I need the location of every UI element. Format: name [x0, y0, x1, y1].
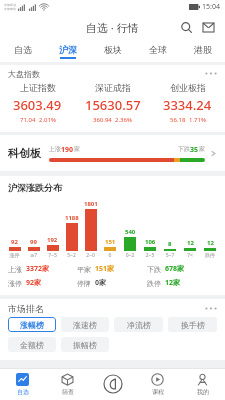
staticText: 沪深涨跌分布 [8, 182, 62, 193]
staticText: 99 [30, 238, 37, 246]
button[interactable]: 市场排名 [8, 299, 217, 317]
staticText: 0~2 [120, 252, 140, 259]
staticText: 2~0 [81, 252, 100, 259]
staticText: 涨速榜 [73, 320, 97, 330]
staticText: 平家 [77, 265, 91, 274]
button[interactable]: 涨幅榜 [8, 317, 56, 332]
staticText: 12 [187, 239, 194, 247]
button[interactable]: 科创板 [8, 135, 217, 171]
staticText: 金额榜 [20, 340, 44, 350]
staticText: 1.71% [189, 116, 206, 124]
staticText: 深证成指 [95, 82, 131, 93]
staticText: 自选 [14, 44, 32, 55]
staticText: 中国电信 [4, 7, 16, 11]
staticText: 3334.24 [163, 96, 212, 114]
staticText: 1801 [84, 200, 98, 208]
staticText: 2.01% [39, 116, 56, 124]
staticText: 5~2 [62, 252, 81, 259]
button[interactable]: 振幅榜 [61, 337, 109, 352]
button[interactable]: 深证成指 [75, 82, 150, 124]
staticText: 190 [61, 145, 74, 155]
button[interactable]: 自选 [0, 40, 45, 62]
button[interactable]: 港股 [180, 40, 225, 62]
staticText: 家 [74, 145, 80, 153]
staticText: 跌停 [200, 252, 220, 258]
button[interactable]: Trade [90, 368, 135, 400]
staticText: 192 [47, 236, 58, 244]
staticText: ≥7 [24, 252, 43, 259]
staticText: 市场排名 [8, 303, 44, 314]
staticText: 家 [199, 145, 205, 153]
staticText: 净流榜 [127, 320, 151, 330]
button[interactable]: 创业板指 [150, 82, 225, 124]
staticText: 沪深 [59, 44, 77, 55]
staticText: 停牌 [77, 279, 91, 288]
staticText: 678家 [165, 264, 185, 274]
staticText: 自选 [17, 388, 29, 396]
staticText: 板块 [104, 44, 122, 55]
staticText: 92家 [26, 278, 42, 288]
button[interactable]: 换手榜 [168, 317, 217, 332]
staticText: 71.04 [20, 116, 36, 124]
button[interactable]: 大盘指数 [8, 65, 217, 82]
button[interactable]: 上证指数 [0, 82, 75, 124]
staticText: 15630.57 [85, 96, 141, 114]
staticText: 56.18 [170, 116, 186, 124]
staticText: 中国移动 [4, 3, 16, 7]
staticText: 下跌 [147, 265, 161, 274]
staticText: 创业板指 [170, 82, 206, 93]
button[interactable]: 金额榜 [8, 337, 56, 352]
staticText: 151家 [95, 264, 115, 274]
staticText: 1188 [65, 214, 79, 222]
staticText: 0家 [95, 278, 107, 288]
staticText: 上证指数 [20, 82, 56, 93]
button[interactable]: 涨速榜 [61, 317, 109, 332]
staticText: 上涨 [49, 145, 61, 153]
staticText: 92 [11, 238, 18, 246]
staticText: 2.36% [115, 116, 132, 124]
staticText: 振幅榜 [73, 340, 97, 350]
staticText: 港股 [194, 44, 212, 55]
staticText: 换手榜 [181, 320, 205, 330]
staticText: 15:04 [202, 2, 220, 12]
staticText: 7< [180, 252, 200, 259]
button[interactable]: 沪深 [45, 40, 90, 62]
button[interactable]: 自选 [0, 368, 45, 400]
button[interactable]: 筛查 [45, 368, 90, 400]
staticText: 涨幅榜 [20, 320, 44, 330]
button[interactable]: 课程 [135, 368, 180, 400]
staticText: 8 [168, 240, 172, 248]
staticText: 课程 [152, 388, 164, 396]
staticText: 上涨 [8, 265, 22, 274]
staticText: 我的 [197, 388, 209, 396]
staticText: 2~5 [140, 252, 160, 259]
button[interactable]: 板块 [90, 40, 135, 62]
button[interactable]: 净流榜 [114, 317, 163, 332]
button[interactable]: Messages [199, 18, 217, 36]
staticText: 大盘指数 [8, 69, 40, 79]
staticText: 自选 · 行情 [86, 20, 139, 35]
staticText: 360.94 [93, 116, 112, 124]
staticText: 3372家 [26, 264, 50, 274]
staticText: 科创板 [8, 146, 41, 160]
staticText: 540 [125, 228, 136, 236]
staticText: 筛查 [62, 388, 74, 396]
staticText: 35 [190, 145, 199, 155]
staticText: 7~5 [43, 252, 62, 259]
staticText: 0 [100, 252, 120, 259]
staticText: 5~7 [160, 252, 180, 259]
staticText: 涨停 [8, 279, 22, 288]
staticText: 涨停 [5, 252, 24, 258]
staticText: 151 [105, 238, 116, 246]
button[interactable]: 全球 [135, 40, 180, 62]
staticText: 3603.49 [13, 96, 62, 114]
staticText: 106 [145, 238, 156, 246]
staticText: 全球 [149, 44, 167, 55]
staticText: 12 [207, 239, 214, 247]
staticText: 跌停 [147, 279, 161, 288]
button[interactable]: 我的 [180, 368, 225, 400]
staticText: 12家 [165, 278, 181, 288]
staticText: 下跌 [178, 145, 190, 153]
button[interactable]: Search [177, 18, 195, 36]
